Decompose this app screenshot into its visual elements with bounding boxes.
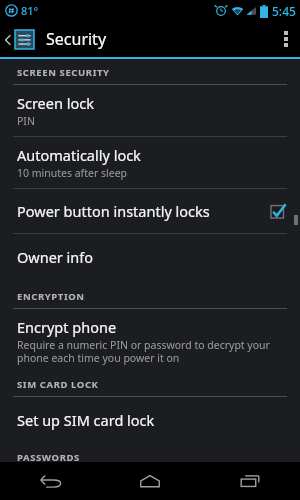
staticText: Require a numeric PIN or password to dec… [17, 338, 270, 365]
staticText: Encrypt phone [17, 317, 117, 337]
button[interactable]: Owner info [0, 234, 300, 280]
button[interactable]: Power button instantly locks [0, 189, 300, 233]
button[interactable]: Automatically lock [0, 137, 300, 188]
staticText: Set up SIM card lock [17, 410, 155, 430]
button[interactable]: Encrypt phone [0, 309, 300, 373]
staticText: Automatically lock [17, 145, 141, 165]
button[interactable]: Navigate up [0, 30, 40, 49]
staticText: 10 minutes after sleep [17, 166, 128, 180]
staticText: Power button instantly locks [17, 201, 210, 221]
staticText: SCREEN SECURITY [17, 66, 110, 79]
button[interactable]: Back [0, 462, 100, 500]
button[interactable]: Screen lock [0, 85, 300, 136]
button[interactable]: Recent apps [200, 462, 300, 500]
staticText: PIN [17, 114, 35, 128]
button[interactable]: Set up SIM card lock [0, 397, 300, 443]
staticText: ENCRYPTION [17, 290, 85, 303]
staticText: Security [46, 28, 107, 50]
button[interactable]: More options [272, 21, 300, 57]
staticText: Screen lock [17, 93, 94, 113]
staticText: PASSWORDS [17, 451, 80, 462]
staticText: SIM CARD LOCK [17, 378, 99, 391]
button[interactable]: Home [100, 462, 200, 500]
staticText: 81° [21, 3, 39, 18]
staticText: Owner info [17, 247, 94, 267]
staticText: 5:45 [272, 3, 296, 19]
